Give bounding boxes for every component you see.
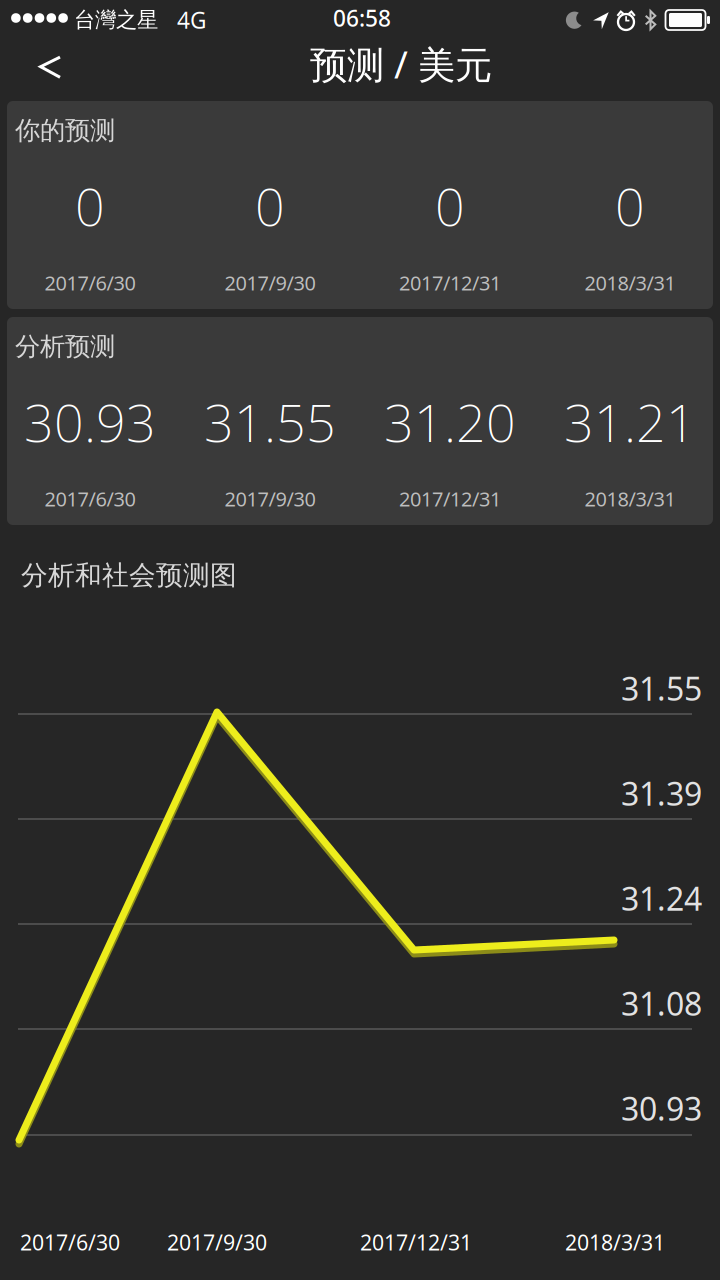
staticText: 30.93 xyxy=(24,387,156,456)
staticText: 2017/12/31 xyxy=(399,269,501,296)
staticText: 31.08 xyxy=(621,982,702,1024)
staticText: 台灣之星 xyxy=(74,7,158,33)
staticText: 0 xyxy=(615,171,645,240)
staticText: 0 xyxy=(435,171,465,240)
staticText: 2018/3/31 xyxy=(584,269,675,296)
staticText: 31.55 xyxy=(621,667,702,709)
staticText: 2017/9/30 xyxy=(167,1228,267,1256)
staticText: 31.55 xyxy=(204,387,336,456)
staticText: 你的预测 xyxy=(15,115,115,146)
staticText: 31.24 xyxy=(621,877,702,919)
staticText: 30.93 xyxy=(621,1087,702,1129)
staticText: 0 xyxy=(75,171,105,240)
staticText: 分析预测 xyxy=(15,331,115,362)
staticText: 2017/9/30 xyxy=(224,269,315,296)
staticText: 31.21 xyxy=(564,387,696,456)
staticText: 分析和社会预测图 xyxy=(21,559,237,592)
staticText: 31.39 xyxy=(621,772,702,814)
staticText: 0 xyxy=(255,171,285,240)
staticText: 4G xyxy=(177,5,207,35)
staticText: 2017/12/31 xyxy=(399,485,501,512)
staticText: 2018/3/31 xyxy=(565,1228,665,1256)
staticText: 2017/6/30 xyxy=(44,485,135,512)
staticText: 2017/9/30 xyxy=(224,485,315,512)
staticText: 2017/6/30 xyxy=(20,1228,120,1256)
staticText: 2018/3/31 xyxy=(584,485,675,512)
staticText: 预测 / 美元 xyxy=(310,39,492,89)
staticText: 31.20 xyxy=(384,387,516,456)
staticText: 06:58 xyxy=(333,3,391,33)
staticText: 2017/6/30 xyxy=(44,269,135,296)
staticText: 2017/12/31 xyxy=(360,1228,472,1256)
button[interactable]: Back xyxy=(0,39,86,88)
